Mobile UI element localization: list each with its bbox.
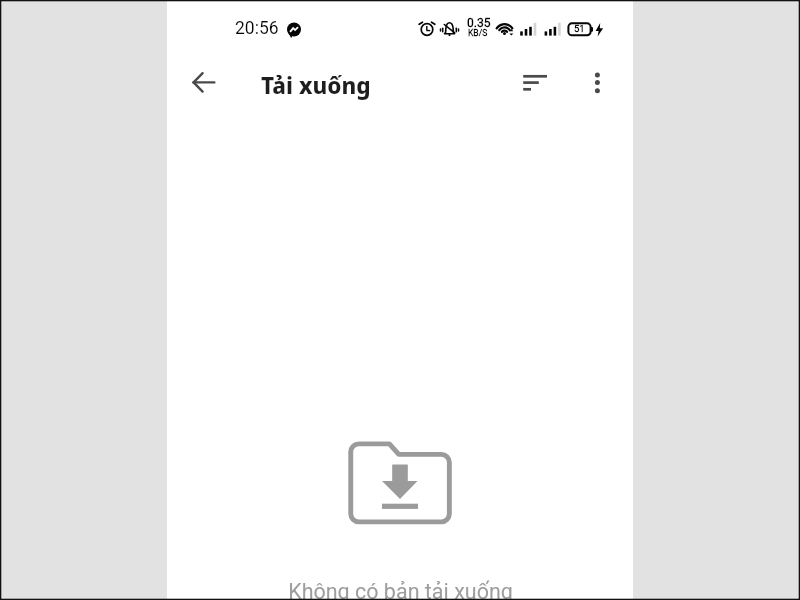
staticText: KB/S — [468, 28, 488, 38]
staticText: Tải xuống — [261, 70, 371, 101]
staticText: 0.35 — [467, 16, 491, 30]
staticText: 20:56 — [235, 18, 279, 39]
staticText: Không có bản tải xuống — [288, 579, 513, 600]
button[interactable]: More options — [575, 60, 620, 105]
button[interactable]: Back — [181, 60, 226, 105]
button[interactable]: Sort — [501, 60, 547, 106]
staticText: 51 — [574, 23, 585, 34]
